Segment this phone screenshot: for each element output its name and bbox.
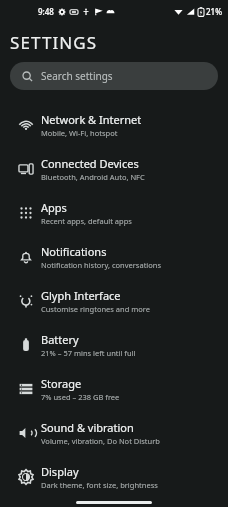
button[interactable]: Glyph Interface <box>0 279 228 323</box>
button[interactable]: Connected Devices <box>0 147 228 191</box>
staticText: Notification history, conversations <box>41 260 162 270</box>
button[interactable]: Battery <box>0 323 228 367</box>
staticText: Recent apps, default apps <box>41 216 132 226</box>
staticText: Storage <box>41 376 82 391</box>
staticText: Search settings <box>41 69 113 83</box>
staticText: Customise ringtones and more <box>41 304 150 314</box>
staticText: Dark theme, font size, brightness <box>41 480 158 490</box>
staticText: Bluetooth, Android Auto, NFC <box>41 172 145 182</box>
button[interactable]: Display <box>0 455 228 499</box>
button[interactable]: Notifications <box>0 235 228 279</box>
button[interactable]: Storage <box>0 367 228 411</box>
staticText: Volume, vibration, Do Not Disturb <box>41 436 160 446</box>
staticText: 21% <box>206 6 222 17</box>
staticText: Connected Devices <box>41 156 139 171</box>
button[interactable]: Apps <box>0 191 228 235</box>
staticText: Apps <box>41 200 67 215</box>
staticText: Network & Internet <box>41 112 142 127</box>
staticText: 9:48 <box>38 6 54 17</box>
staticText: Display <box>41 464 79 479</box>
staticText: Battery <box>41 332 79 347</box>
button[interactable]: Network & Internet <box>0 103 228 147</box>
staticText: SETTINGS <box>10 31 98 53</box>
staticText: Notifications <box>41 244 107 259</box>
staticText: 7% used – 238 GB free <box>41 392 120 402</box>
button[interactable]: Sound & vibration <box>0 411 228 455</box>
staticText: Sound & vibration <box>41 420 134 435</box>
button[interactable]: Search settings <box>10 62 218 90</box>
staticText: 21% – 57 mins left until full <box>41 348 136 358</box>
staticText: Mobile, Wi-Fi, hotspot <box>41 128 118 138</box>
staticText: Glyph Interface <box>41 288 121 303</box>
